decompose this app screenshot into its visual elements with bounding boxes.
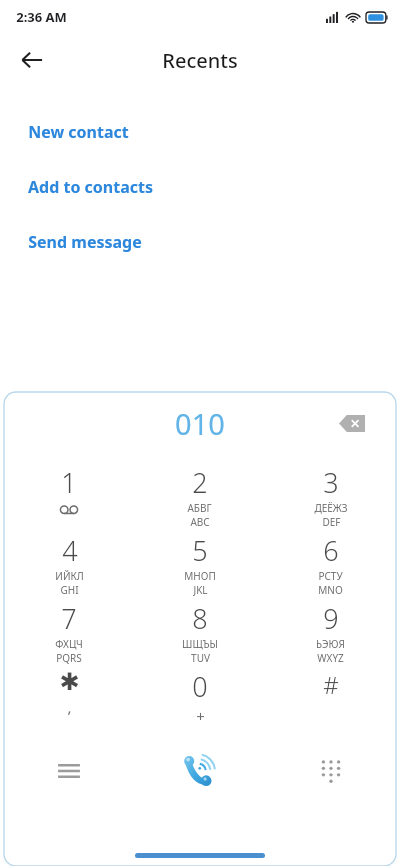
staticText: TUV <box>191 651 210 664</box>
staticText: РСТУ <box>318 569 343 583</box>
button[interactable]: Back <box>8 36 56 84</box>
staticText: 7 <box>61 600 77 637</box>
staticText: ШЩЪЫ <box>182 637 218 651</box>
button[interactable]: Add to contacts <box>0 159 400 214</box>
staticText: ✱ <box>59 668 80 696</box>
button[interactable]: Send message <box>0 214 400 269</box>
staticText: JKL <box>193 583 208 596</box>
staticText: 4 <box>62 532 78 569</box>
staticText: # <box>323 668 339 701</box>
staticText: 2:36 AM <box>16 8 67 26</box>
staticText: WXYZ <box>317 651 344 664</box>
staticText: , <box>67 697 72 717</box>
staticText: 1 <box>61 464 77 501</box>
staticText: New contact <box>28 121 129 143</box>
staticText: МНОП <box>184 569 216 583</box>
button[interactable]: 2 <box>134 460 265 528</box>
button[interactable]: New contact <box>0 104 400 159</box>
button[interactable]: Call <box>134 738 265 804</box>
button[interactable]: Dialpad <box>265 738 396 804</box>
staticText: Recents <box>162 47 238 74</box>
staticText: ДЕЁЖЗ <box>314 501 348 515</box>
button[interactable]: ✱ <box>4 664 134 717</box>
staticText: 6 <box>323 532 339 569</box>
staticText: ФХЦЧ <box>55 637 83 651</box>
staticText: 010 <box>175 404 225 443</box>
button[interactable]: Menu <box>4 738 134 804</box>
staticText: 5 <box>192 532 208 569</box>
staticText: MNO <box>318 583 343 596</box>
staticText: 9 <box>323 600 339 637</box>
staticText: Add to contacts <box>28 176 153 198</box>
staticText: ЬЭЮЯ <box>316 637 345 651</box>
button[interactable]: Backspace <box>332 403 372 443</box>
staticText: Send message <box>28 231 142 253</box>
staticText: 2 <box>192 464 208 501</box>
button[interactable]: 7 <box>4 596 134 664</box>
button[interactable]: 3 <box>265 460 396 528</box>
staticText: GHI <box>60 583 79 596</box>
staticText: PQRS <box>56 651 82 664</box>
staticText: + <box>196 706 205 726</box>
button[interactable]: 6 <box>265 528 396 596</box>
button[interactable]: 1 <box>4 460 134 514</box>
staticText: ИЙКЛ <box>55 569 84 583</box>
staticText: 8 <box>192 600 208 637</box>
button[interactable]: # <box>265 664 396 701</box>
button[interactable]: 0 <box>134 664 265 726</box>
staticText: DEF <box>322 515 341 528</box>
staticText: 0 <box>192 668 208 705</box>
button[interactable]: 9 <box>265 596 396 664</box>
button[interactable]: 8 <box>134 596 265 664</box>
staticText: АБВГ <box>187 501 212 515</box>
button[interactable]: 4 <box>4 528 134 596</box>
staticText: ABC <box>190 515 210 528</box>
button[interactable]: 5 <box>134 528 265 596</box>
staticText: 3 <box>323 464 339 501</box>
